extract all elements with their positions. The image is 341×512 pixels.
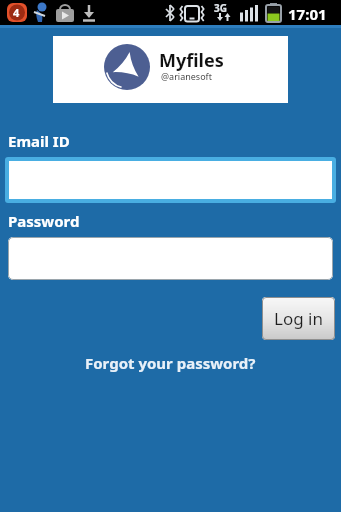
staticText: Password (8, 211, 80, 231)
staticText: Email ID (8, 131, 70, 151)
staticText: 4 (13, 5, 20, 20)
staticText: @arianesoft (161, 70, 212, 82)
staticText: 17:01 (288, 4, 327, 24)
button[interactable]: Forgot your password? (85, 353, 256, 373)
button[interactable] (8, 237, 333, 280)
staticText: Myfiles (159, 48, 224, 73)
staticText: Log in (274, 307, 323, 330)
staticText: Forgot your password? (85, 353, 256, 373)
button[interactable]: Log in (262, 297, 335, 340)
staticText: 3G (214, 1, 227, 15)
